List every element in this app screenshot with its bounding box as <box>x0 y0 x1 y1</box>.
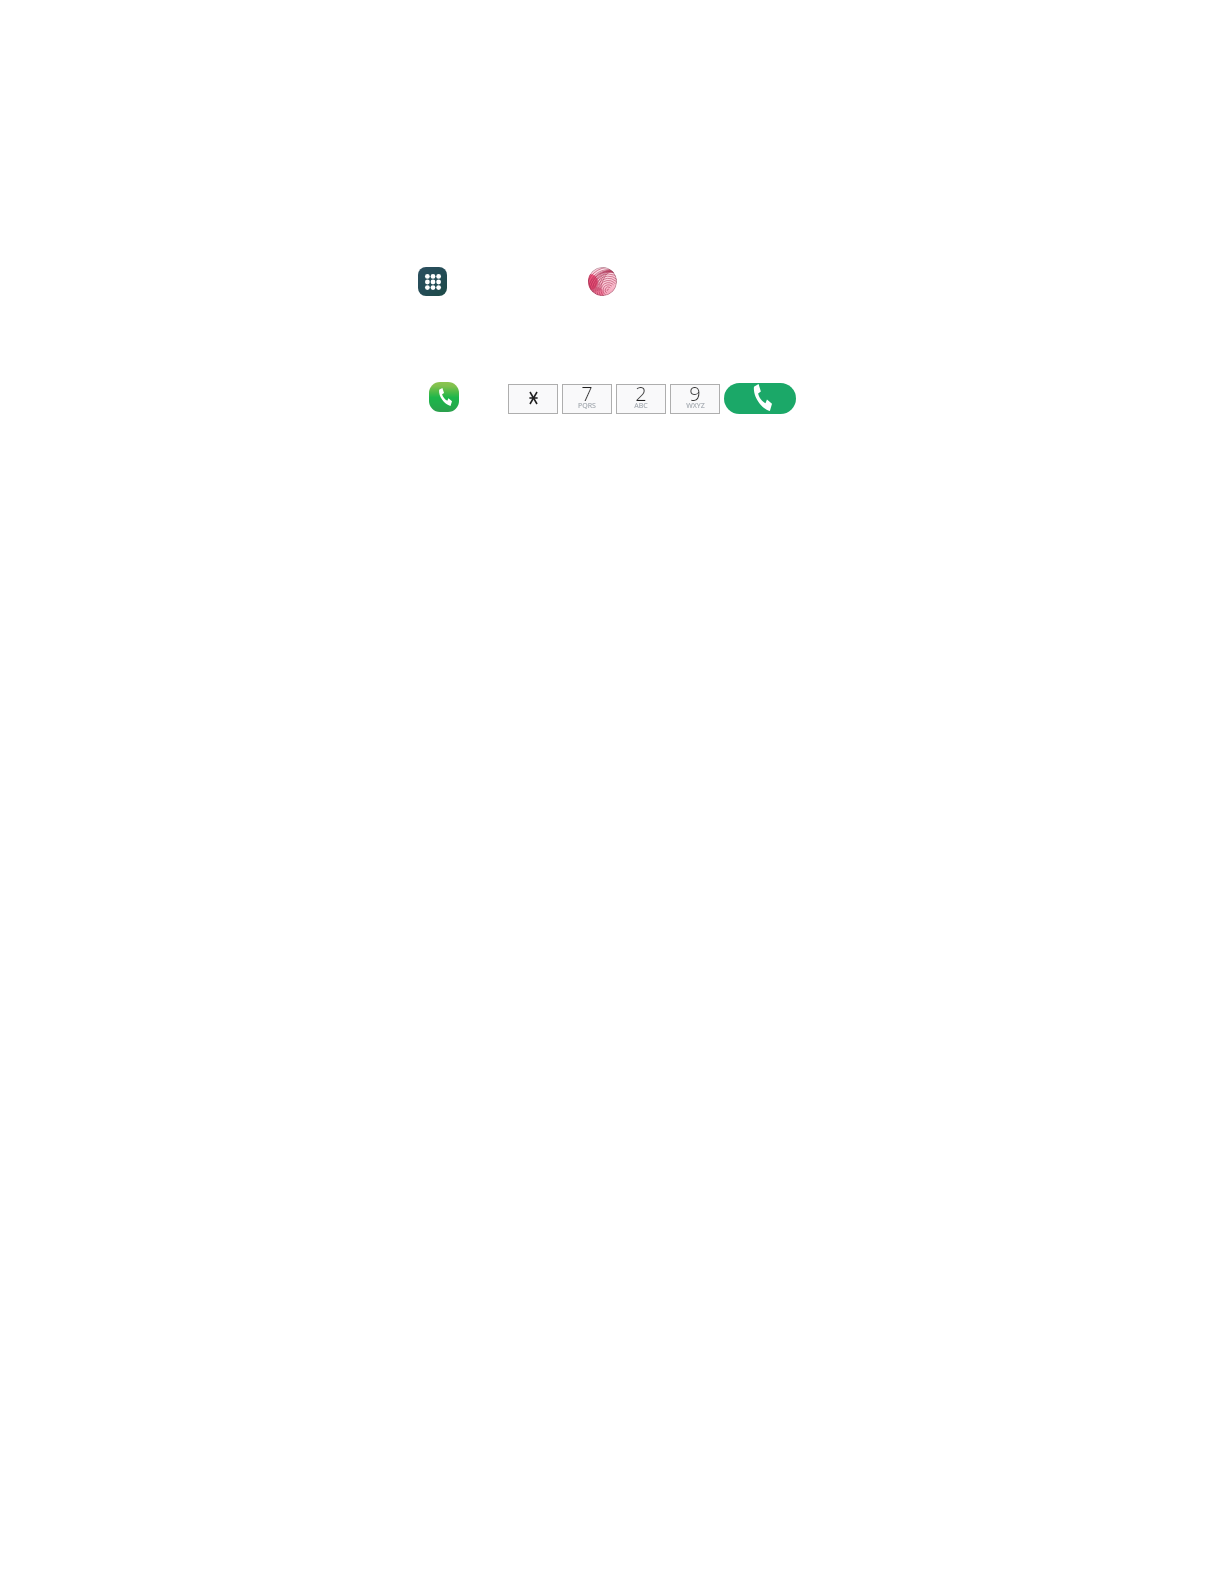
staticText: 9 <box>689 380 701 407</box>
button[interactable]: Dialpad <box>418 267 447 296</box>
button[interactable]: Star <box>508 384 558 414</box>
button[interactable]: Fingerprint <box>588 267 617 296</box>
button[interactable]: Phone app <box>429 382 459 412</box>
button[interactable]: Call <box>724 383 796 414</box>
staticText: 7 <box>581 380 593 407</box>
staticText: ABC <box>634 401 648 411</box>
staticText: PQRS <box>578 401 596 411</box>
button[interactable]: 2 ABC <box>616 384 666 414</box>
staticText: WXYZ <box>686 401 705 411</box>
button[interactable]: 7 PQRS <box>562 384 612 414</box>
button[interactable]: 9 WXYZ <box>670 384 720 414</box>
staticText: 2 <box>635 380 647 407</box>
